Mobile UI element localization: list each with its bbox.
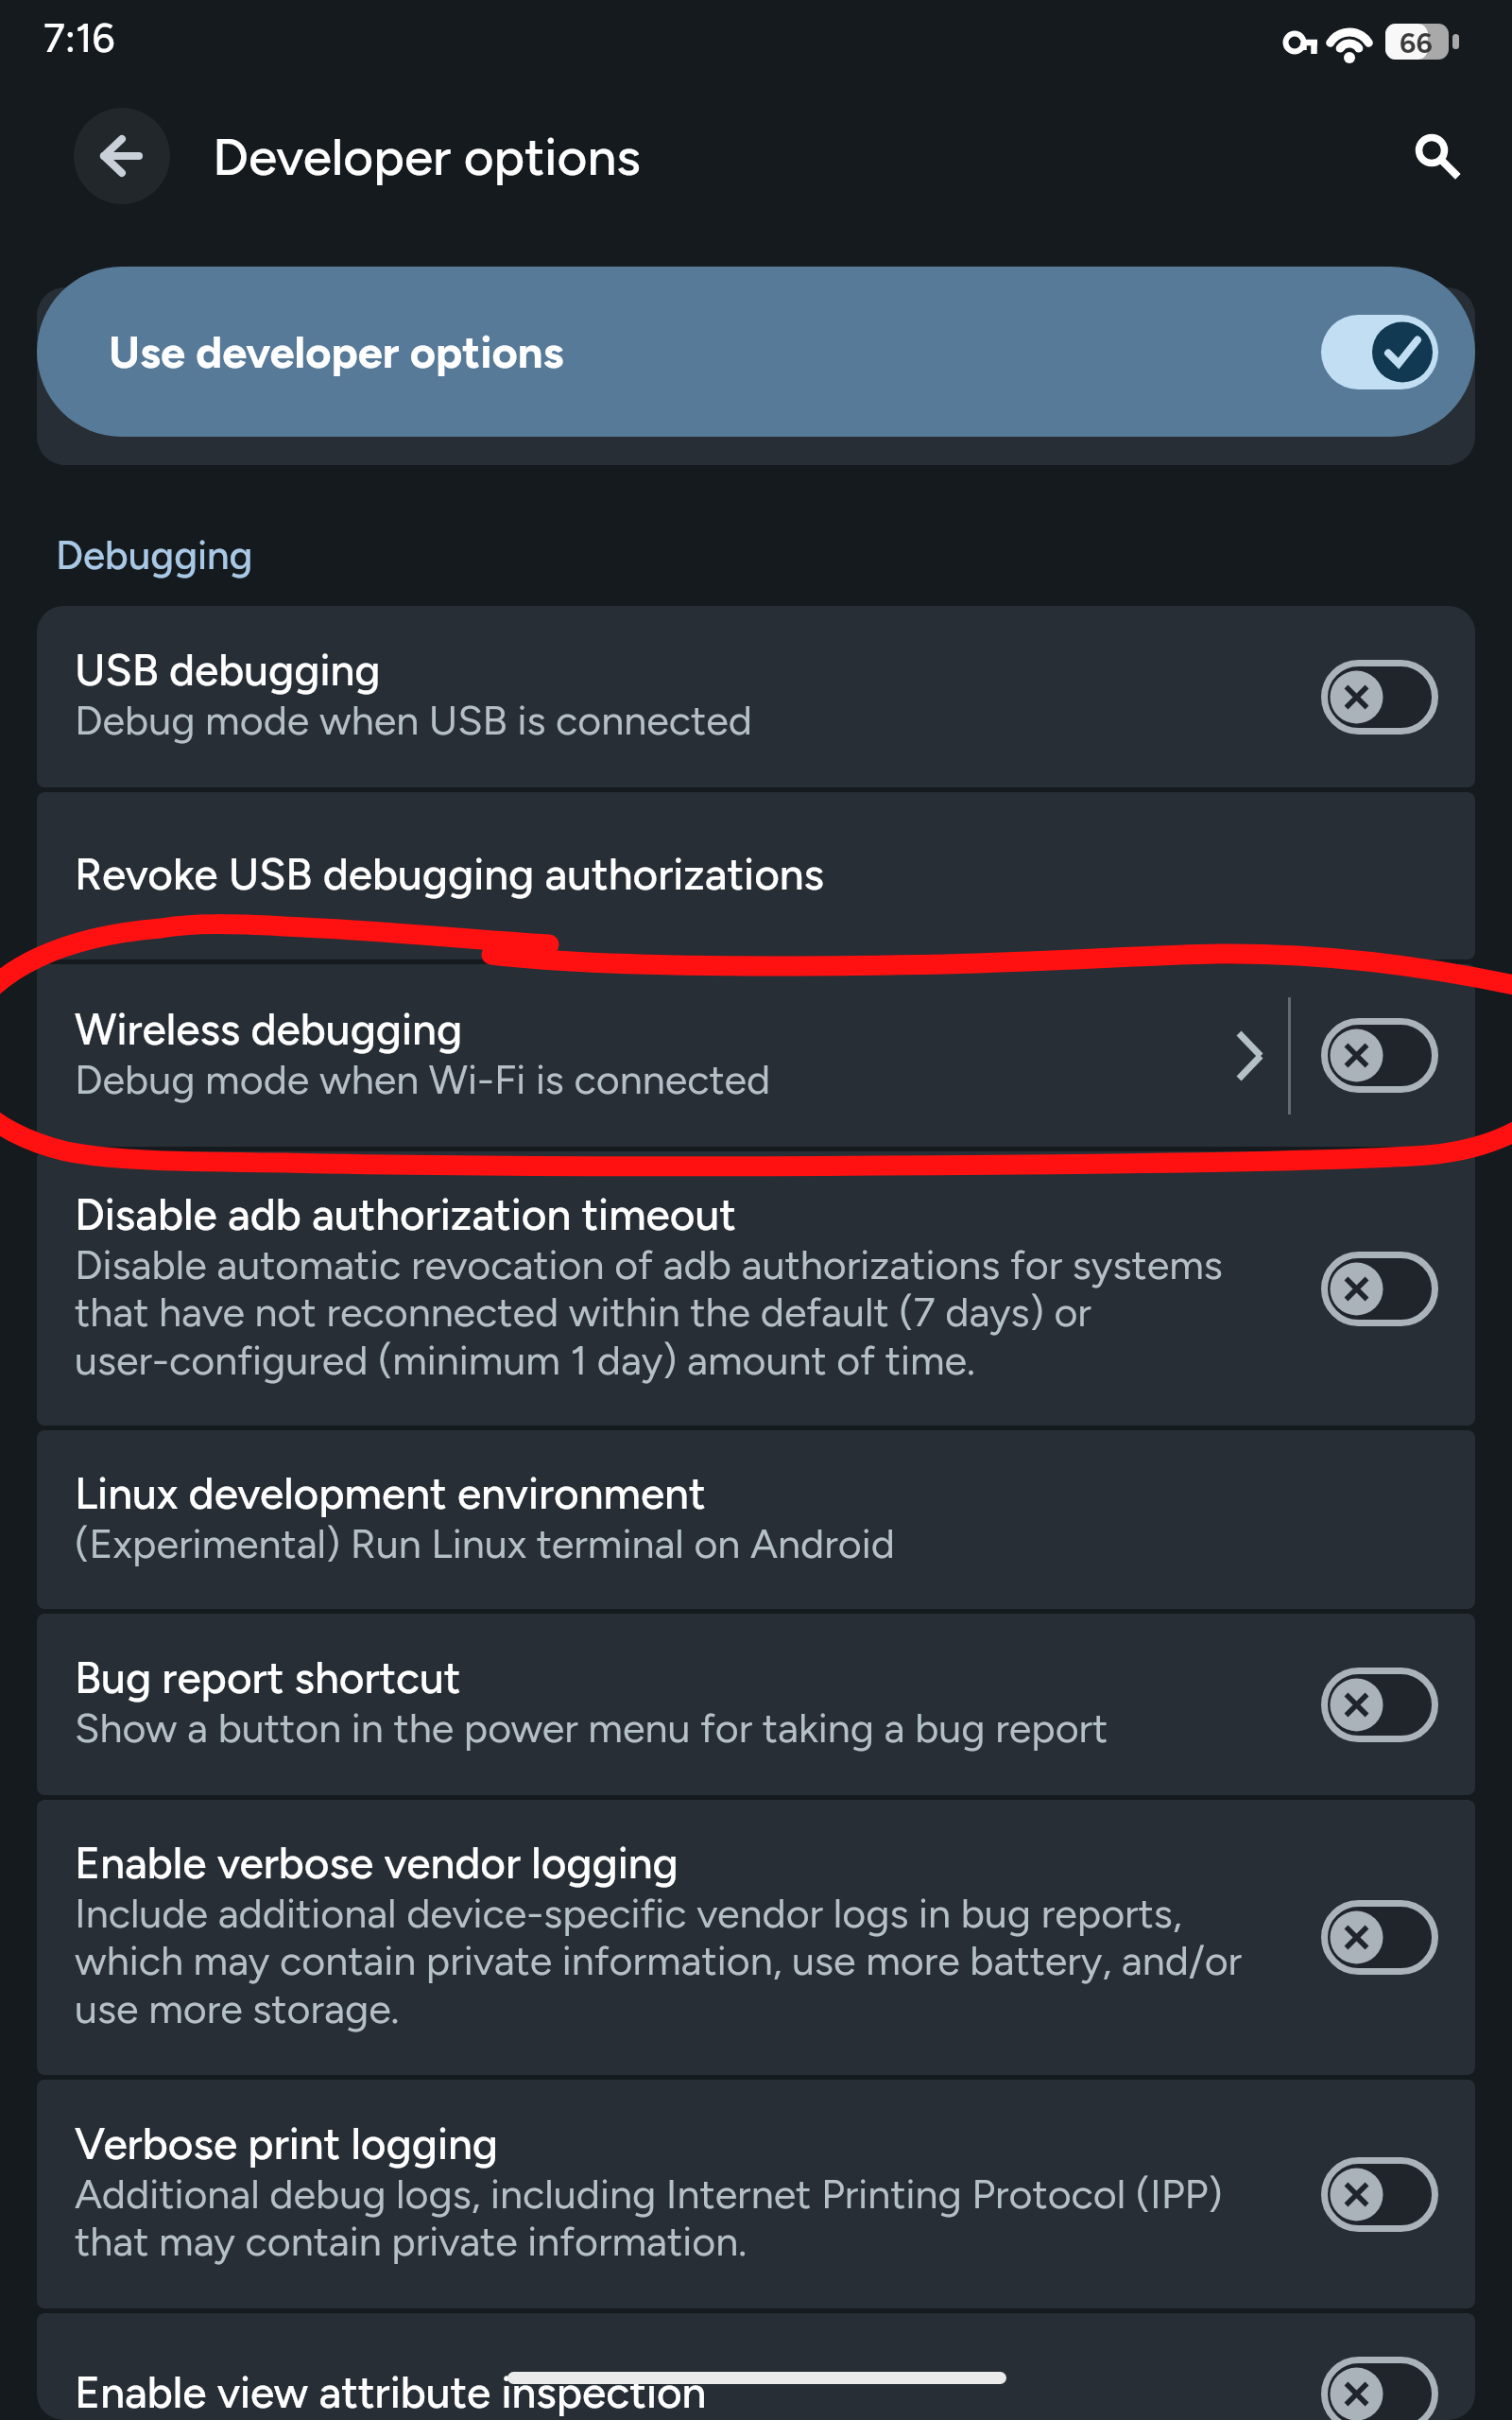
staticText: Enable verbose vendor logging bbox=[75, 1837, 1246, 1889]
button[interactable]: Use developer options bbox=[37, 267, 1475, 437]
button[interactable]: Enable view attribute inspection bbox=[37, 2313, 1475, 2420]
staticText: Linux development environment bbox=[75, 1467, 1246, 1519]
staticText: Revoke USB debugging authorizations bbox=[75, 848, 1246, 900]
button[interactable]: Verbose print logging bbox=[37, 2080, 1475, 2308]
staticText: USB debugging bbox=[75, 644, 1246, 696]
staticText: 66 bbox=[1400, 26, 1433, 60]
button[interactable]: Linux development environment bbox=[37, 1430, 1475, 1609]
staticText: Show a button in the power menu for taki… bbox=[75, 1703, 1246, 1753]
staticText: Bug report shortcut bbox=[75, 1651, 1246, 1703]
button[interactable]: Bug report shortcut bbox=[37, 1614, 1475, 1795]
staticText: Enable view attribute inspection bbox=[75, 2366, 1246, 2418]
staticText: Developer options bbox=[213, 126, 641, 188]
staticText: Debugging bbox=[56, 531, 253, 579]
staticText: Additional debug logs, including Interne… bbox=[75, 2169, 1246, 2266]
staticText: (Experimental) Run Linux terminal on And… bbox=[75, 1519, 1246, 1568]
staticText: Wireless debugging bbox=[75, 1003, 1246, 1055]
staticText: Use developer options bbox=[109, 325, 1321, 378]
button[interactable]: Back bbox=[74, 108, 170, 204]
button[interactable]: Search bbox=[1383, 108, 1480, 204]
button[interactable]: Wireless debugging bbox=[37, 964, 1475, 1147]
button[interactable]: USB debugging bbox=[37, 606, 1475, 787]
button[interactable]: Enable verbose vendor logging bbox=[37, 1800, 1475, 2075]
staticText: Disable automatic revocation of adb auth… bbox=[75, 1240, 1246, 1385]
staticText: Debug mode when Wi-Fi is connected bbox=[75, 1055, 1246, 1104]
staticText: Debug mode when USB is connected bbox=[75, 696, 1246, 745]
staticText: Disable adb authorization timeout bbox=[75, 1188, 1246, 1240]
staticText: Verbose print logging bbox=[75, 2117, 1246, 2169]
staticText: 7:16 bbox=[43, 14, 115, 61]
button[interactable]: Revoke USB debugging authorizations bbox=[37, 792, 1475, 959]
button[interactable]: Disable adb authorization timeout bbox=[37, 1151, 1475, 1426]
staticText: Include additional device-⁠specific vend… bbox=[75, 1889, 1246, 2033]
